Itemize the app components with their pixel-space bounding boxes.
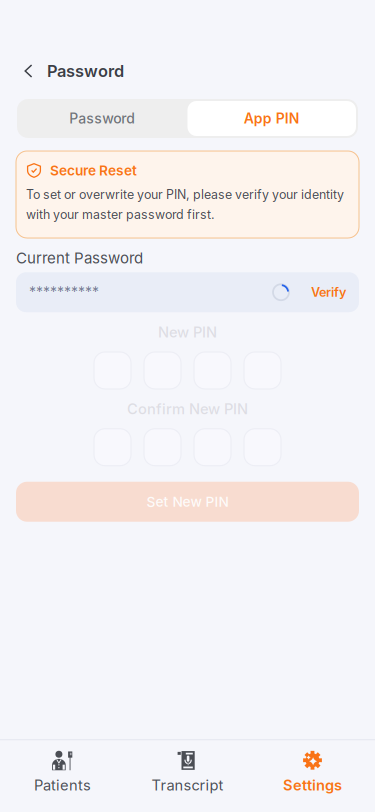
staticText: New PIN <box>158 323 217 341</box>
staticText: ********** <box>29 284 99 301</box>
staticText: Settings <box>283 776 342 794</box>
staticText: Secure Reset <box>50 162 137 179</box>
staticText: Verify <box>311 285 346 300</box>
button[interactable]: Password <box>17 99 187 138</box>
button[interactable]: Settings <box>250 750 375 794</box>
staticText: Password <box>47 61 124 81</box>
button[interactable]: Patients <box>0 750 125 794</box>
staticText: Set New PIN <box>146 493 228 510</box>
staticText: App PIN <box>244 110 300 127</box>
staticText: To set or overwrite your PIN, please ver… <box>26 187 344 222</box>
button[interactable]: Transcript <box>125 750 250 794</box>
staticText: Patients <box>34 776 91 794</box>
button[interactable]: Set New PIN <box>16 482 359 522</box>
button[interactable]: App PIN <box>187 99 358 138</box>
staticText: Confirm New PIN <box>127 400 248 418</box>
staticText: Transcript <box>151 776 223 794</box>
button[interactable]: Verify <box>289 273 346 312</box>
staticText: Password <box>69 110 135 127</box>
staticText: Current Password <box>16 249 143 267</box>
button[interactable]: Back <box>18 58 40 84</box>
